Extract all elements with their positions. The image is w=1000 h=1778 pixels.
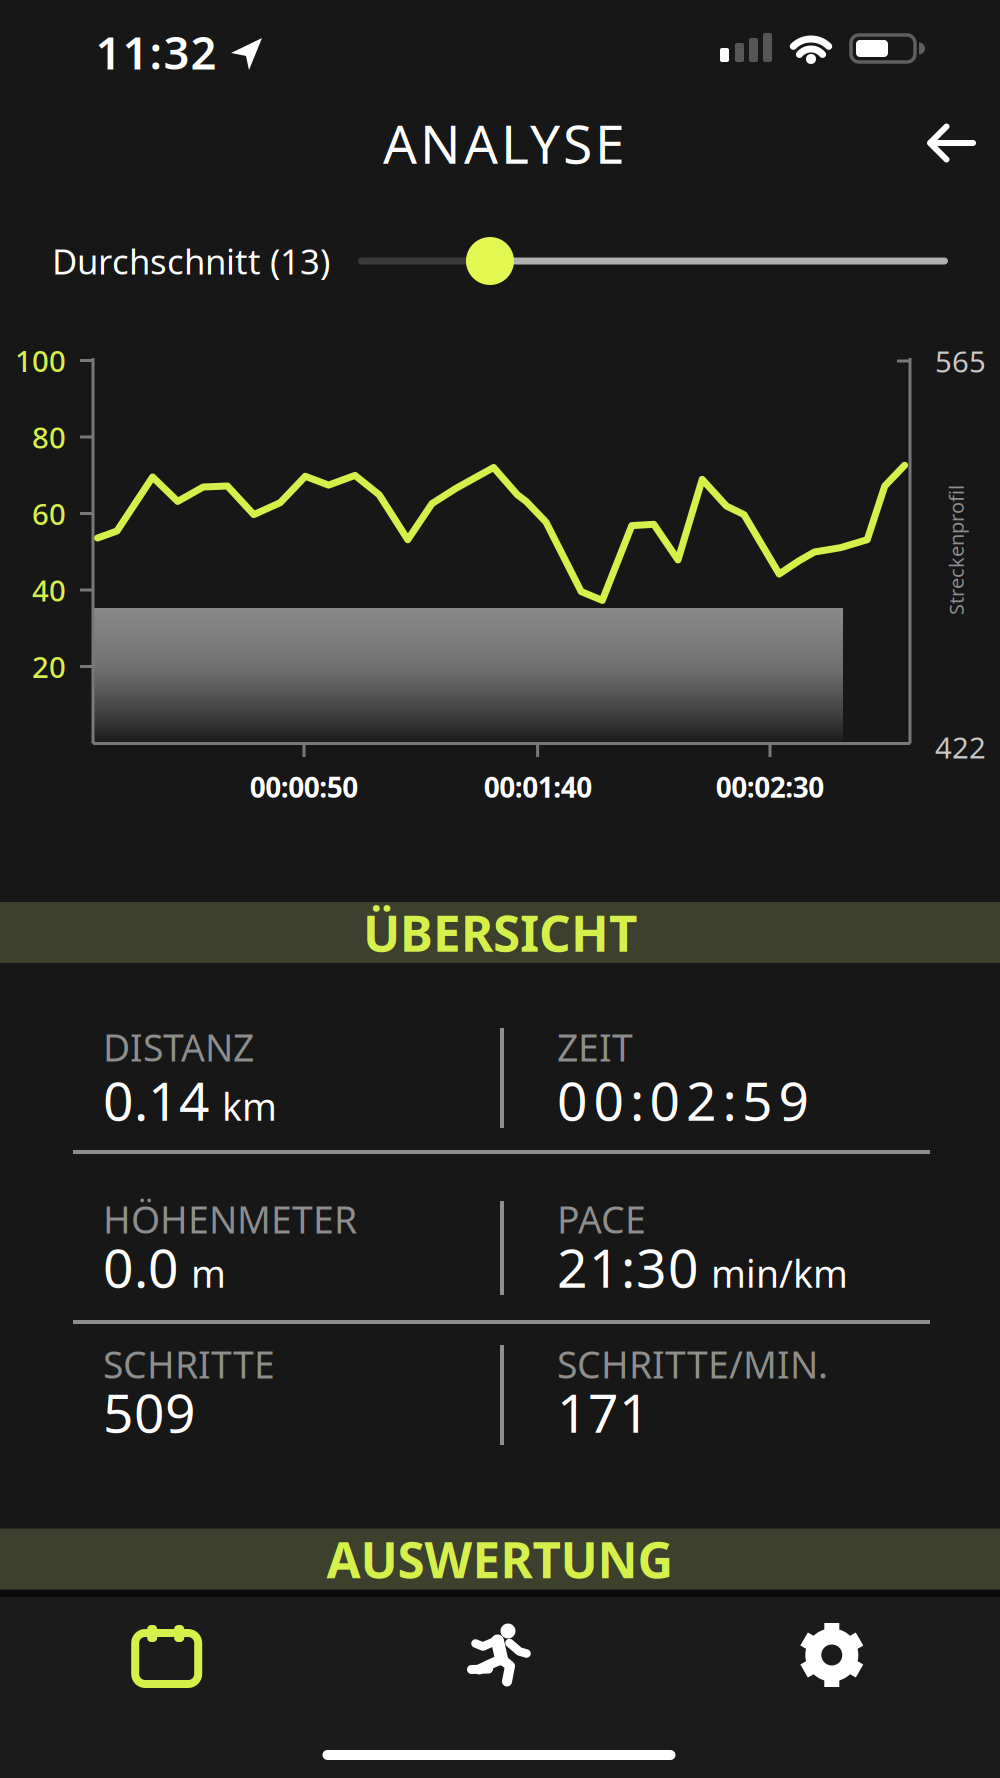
staticText: ZEIT xyxy=(557,1022,633,1072)
staticText: SCHRITTE/MIN. xyxy=(557,1339,828,1389)
staticText: 00:00:50 xyxy=(250,768,358,806)
staticText: 0.0 xyxy=(103,1232,179,1302)
staticText: 422 xyxy=(935,727,986,766)
staticText: 171 xyxy=(557,1377,650,1447)
staticText: AUSWERTUNG xyxy=(326,1526,673,1592)
staticText: 60 xyxy=(32,494,66,533)
button[interactable]: Back xyxy=(905,103,995,183)
staticText: km xyxy=(222,1081,277,1131)
staticText: min/km xyxy=(711,1248,848,1298)
staticText: 21:30 xyxy=(557,1232,699,1302)
staticText: Durchschnitt (13) xyxy=(52,238,330,284)
staticText: 0.14 xyxy=(103,1065,210,1135)
button[interactable]: Kalender xyxy=(0,1598,333,1778)
staticText: ANALYSE xyxy=(383,108,625,178)
staticText: SCHRITTE xyxy=(103,1339,275,1389)
staticText: DISTANZ xyxy=(103,1022,254,1072)
staticText: m xyxy=(191,1248,226,1298)
button[interactable]: Einstellungen xyxy=(667,1598,1000,1778)
button[interactable]: Aktivität xyxy=(333,1598,666,1778)
button[interactable]: Durchschnitt xyxy=(358,237,948,285)
staticText: 20 xyxy=(32,647,66,686)
staticText: 00:02:30 xyxy=(716,768,824,806)
staticText: 00:01:40 xyxy=(484,768,592,806)
staticText: PACE xyxy=(557,1194,646,1244)
staticText: HÖHENMETER xyxy=(103,1194,357,1244)
staticText: 11:32 xyxy=(95,22,216,82)
staticText: 00:02:59 xyxy=(557,1065,809,1135)
staticText: 100 xyxy=(15,341,66,380)
staticText: Streckenprofil xyxy=(891,537,1000,563)
staticText: 80 xyxy=(32,417,66,456)
staticText: 40 xyxy=(32,570,66,609)
staticText: 565 xyxy=(935,341,986,380)
staticText: 509 xyxy=(103,1377,196,1447)
staticText: ÜBERSICHT xyxy=(363,900,637,965)
